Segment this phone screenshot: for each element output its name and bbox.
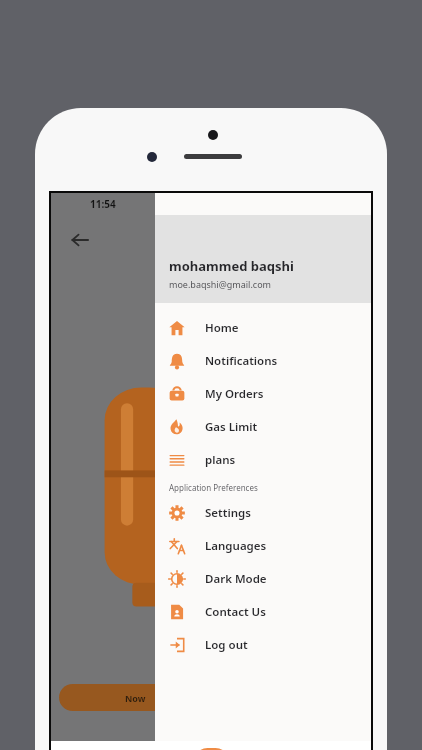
staticText: Log out [205, 637, 248, 653]
button[interactable]: Home [179, 741, 243, 750]
button[interactable]: Languages [155, 529, 371, 562]
button[interactable]: plans [155, 443, 371, 476]
staticText: 11:54 [90, 197, 116, 211]
staticText: Gas Limit [205, 419, 258, 435]
staticText: moe.baqshi@gmail.com [169, 278, 271, 290]
staticText: Settings [205, 505, 251, 521]
staticText: mohammed baqshi [169, 257, 294, 275]
button[interactable]: Gas Limit [155, 410, 371, 443]
staticText: plans [205, 452, 236, 468]
staticText: Notifications [205, 353, 278, 369]
staticText: Application Preferences [169, 482, 258, 493]
staticText: My Orders [205, 386, 264, 402]
button[interactable]: Back [63, 223, 97, 257]
button[interactable]: Log out [155, 628, 371, 661]
staticText: Contact Us [205, 604, 266, 620]
button[interactable]: Now [59, 684, 211, 711]
staticText: Now [125, 692, 146, 704]
button[interactable]: My Orders [155, 377, 371, 410]
button[interactable]: Contact Us [155, 595, 371, 628]
button[interactable]: Home [155, 311, 371, 344]
staticText: Dark Mode [205, 571, 267, 587]
button[interactable]: Settings [155, 496, 371, 529]
button[interactable]: Dark Mode [155, 562, 371, 595]
staticText: Languages [205, 538, 267, 554]
staticText: Home [205, 320, 239, 336]
button[interactable]: Notifications [155, 344, 371, 377]
